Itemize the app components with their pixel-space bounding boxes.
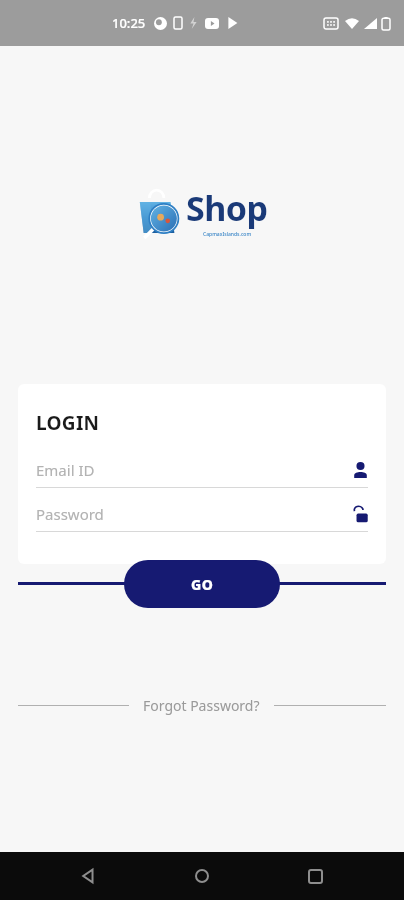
staticText: GO — [191, 575, 214, 594]
other: User — [353, 462, 368, 478]
button[interactable]: GO — [124, 560, 280, 608]
staticText: Shop — [186, 185, 268, 231]
staticText: Password — [36, 504, 354, 524]
button[interactable]: Password — [36, 500, 368, 532]
staticText: CapmaxIslands.com — [203, 231, 252, 238]
button[interactable]: Forgot Password? — [129, 690, 274, 721]
button[interactable]: Recent apps — [291, 852, 339, 900]
button[interactable]: Email ID — [36, 456, 368, 488]
staticText: LOGIN — [36, 410, 100, 436]
button[interactable]: Home — [178, 852, 226, 900]
staticText: Forgot Password? — [143, 696, 260, 715]
button[interactable]: Back — [65, 852, 113, 900]
other: Password visibility — [354, 506, 368, 523]
staticText: 10:25 — [112, 14, 146, 32]
staticText: Email ID — [36, 460, 353, 480]
